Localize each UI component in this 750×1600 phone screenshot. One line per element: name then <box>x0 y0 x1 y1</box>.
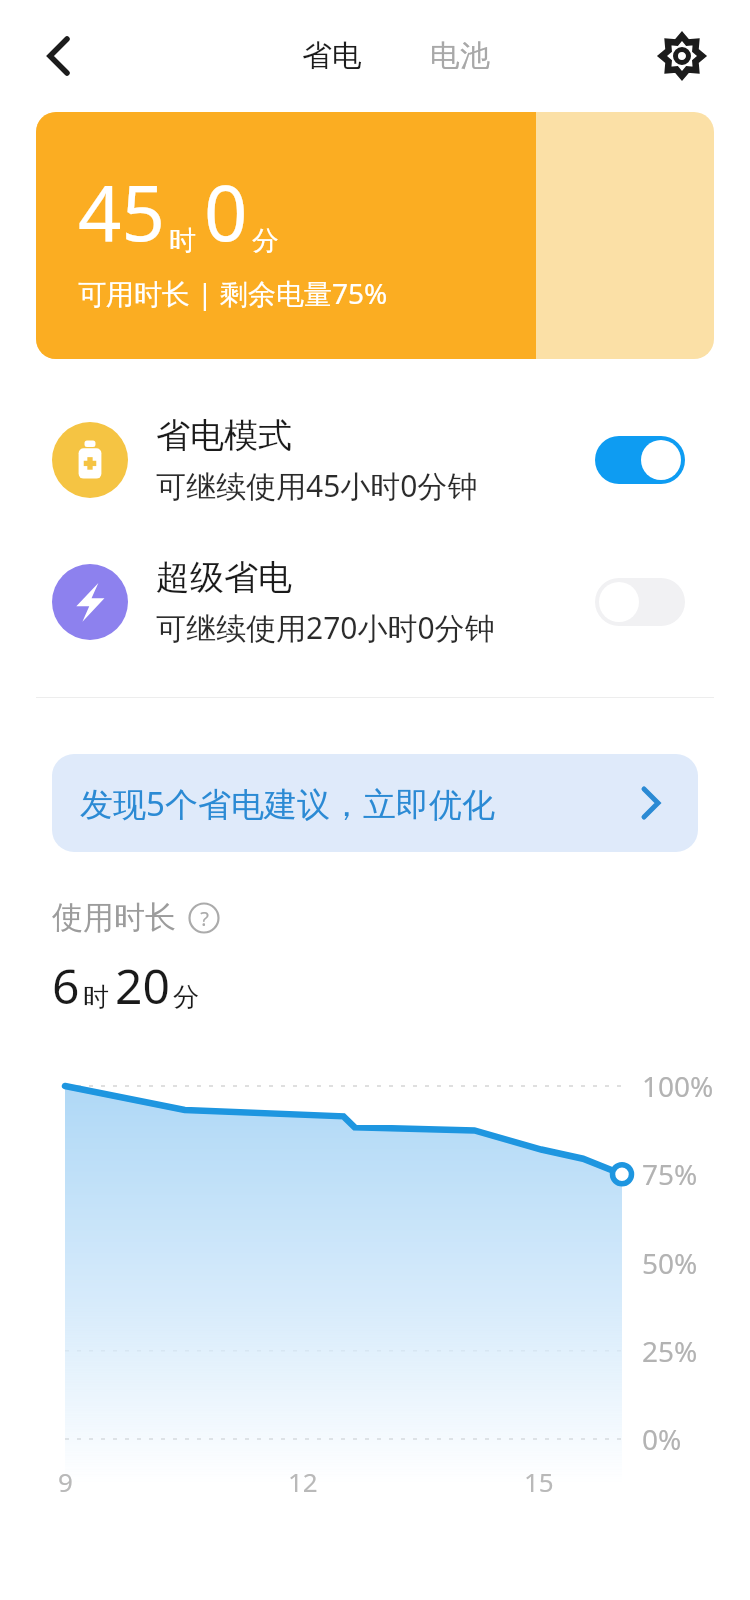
staticText: 100% <box>642 1067 714 1105</box>
staticText: 12 <box>288 1464 318 1499</box>
button[interactable]: Settings <box>656 30 708 82</box>
staticText: 分 <box>173 981 199 1014</box>
staticText: 时 <box>83 981 109 1014</box>
staticText: 可继续使用270小时0分钟 <box>156 607 495 648</box>
staticText: 0 <box>204 160 248 264</box>
button[interactable]: 省电 <box>294 27 370 85</box>
button[interactable]: 超级省电 off <box>595 578 685 626</box>
staticText: 发现5个省电建议，立即优化 <box>80 781 634 826</box>
staticText: 0% <box>642 1420 682 1458</box>
staticText: 25% <box>642 1332 698 1370</box>
button[interactable]: 超级省电 <box>0 531 750 673</box>
staticText: 使用时长 <box>52 898 176 937</box>
staticText: 50% <box>642 1244 698 1282</box>
button[interactable]: 省电模式 on <box>595 436 685 484</box>
staticText: 15 <box>524 1464 554 1499</box>
staticText: 9 <box>58 1464 73 1499</box>
button[interactable]: Help <box>188 902 220 934</box>
button[interactable]: 45 <box>36 112 714 359</box>
button[interactable]: 电池 <box>422 27 498 85</box>
staticText: 45 <box>78 160 165 264</box>
staticText: 省电模式 <box>156 414 292 457</box>
staticText: 20 <box>115 953 170 1018</box>
staticText: 时 <box>169 224 196 258</box>
staticText: 电池 <box>430 37 490 75</box>
button[interactable]: 省电模式 <box>0 389 750 531</box>
staticText: 可用时长 | 剩余电量75% <box>78 274 388 312</box>
staticText: 超级省电 <box>156 556 292 599</box>
staticText: ? <box>200 905 209 932</box>
button[interactable]: Back <box>26 24 90 88</box>
staticText: 6 <box>52 953 80 1018</box>
staticText: 分 <box>252 224 279 258</box>
staticText: 可继续使用45小时0分钟 <box>156 465 478 506</box>
staticText: 75% <box>642 1155 698 1193</box>
button[interactable]: 发现5个省电建议，立即优化 <box>52 754 698 852</box>
staticText: 省电 <box>302 37 362 75</box>
